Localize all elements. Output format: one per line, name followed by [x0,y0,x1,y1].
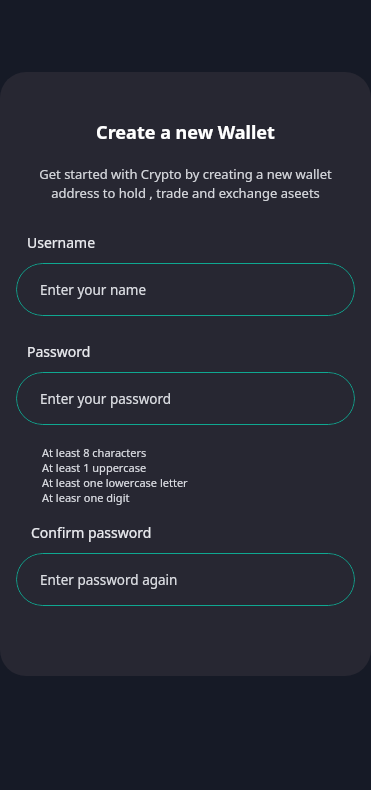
staticText: Enter your name [40,281,147,299]
staticText: Enter password again [40,571,178,589]
button[interactable]: Password input field [16,372,355,425]
staticText: At least 1 uppercase [42,460,147,475]
button[interactable]: Confirm password input field [16,553,355,606]
staticText: Confirm password [31,523,152,542]
staticText: Enter your password [40,390,172,408]
staticText: At least one lowercase letter [42,475,188,490]
staticText: Create a new Wallet [0,120,371,145]
button[interactable]: Username input field [16,263,355,316]
staticText: Get started with Crypto by creating a ne… [20,165,351,202]
staticText: At leasr one digit [42,490,130,505]
staticText: Password [27,342,91,361]
staticText: Username [27,233,96,252]
staticText: At least 8 characters [42,445,147,460]
